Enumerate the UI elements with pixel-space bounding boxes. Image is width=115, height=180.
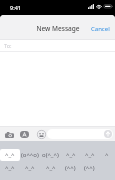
button[interactable]: To: (0, 40, 115, 51)
button[interactable]: ^_^ (40, 162, 61, 174)
button[interactable]: ^_^ (0, 162, 20, 174)
button[interactable]: Stickers (36, 129, 46, 139)
staticText: o(^_^) (42, 151, 59, 159)
staticText: ^ (105, 151, 109, 159)
staticText: Cancel (91, 25, 110, 33)
button[interactable]: ^_^ (20, 162, 40, 174)
button[interactable]: Cancel (85, 15, 115, 39)
button[interactable]: Send (104, 130, 112, 138)
button[interactable]: ^_^ (0, 149, 20, 161)
button[interactable]: Camera (4, 129, 15, 140)
button[interactable]: (^^) (80, 162, 99, 174)
staticText: 9:41 (10, 4, 21, 11)
staticText: New Message (36, 24, 80, 33)
staticText: ^_^ (5, 151, 15, 159)
button[interactable]: Send (47, 129, 113, 139)
staticText: ^_^ (46, 164, 56, 172)
staticText: ^_^ (85, 151, 95, 159)
button[interactable]: o(^_^) (40, 149, 61, 161)
staticText: ^_^ (5, 164, 15, 172)
staticText: ^_^ (66, 151, 76, 159)
button[interactable]: (^^) (61, 162, 80, 174)
staticText: To: (4, 42, 12, 49)
button[interactable]: ^_^ (80, 149, 99, 161)
button[interactable]: ^ (99, 149, 115, 161)
button[interactable]: ^_^ (61, 149, 80, 161)
staticText: (^^) (65, 164, 76, 172)
staticText: (o^^o) (21, 151, 39, 159)
button[interactable]: (o^^o) (20, 149, 40, 161)
button[interactable]: App Store (19, 129, 29, 139)
staticText: (^^) (84, 164, 95, 172)
staticText: ^_^ (25, 164, 35, 172)
